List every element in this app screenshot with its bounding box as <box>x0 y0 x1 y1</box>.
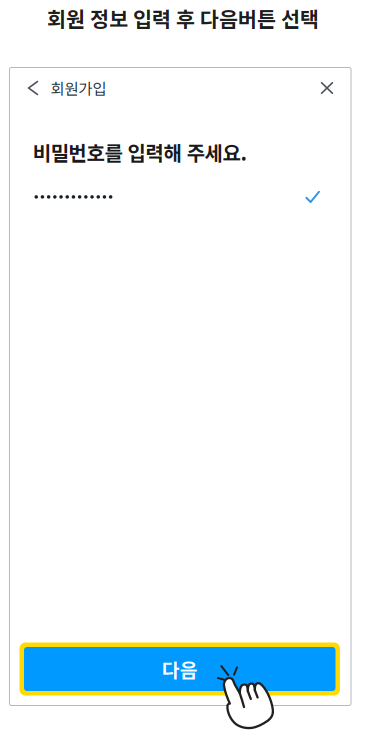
button[interactable]: Close <box>309 67 351 108</box>
staticText: 회원가입 <box>50 77 106 99</box>
button[interactable]: Back <box>9 67 50 108</box>
staticText: 비밀번호를 입력해 주세요. <box>32 137 247 166</box>
staticText: 다음 <box>162 655 198 683</box>
staticText: 회원 정보 입력 후 다음버튼 선택 <box>47 3 319 33</box>
button[interactable]: 다음 <box>24 647 335 691</box>
